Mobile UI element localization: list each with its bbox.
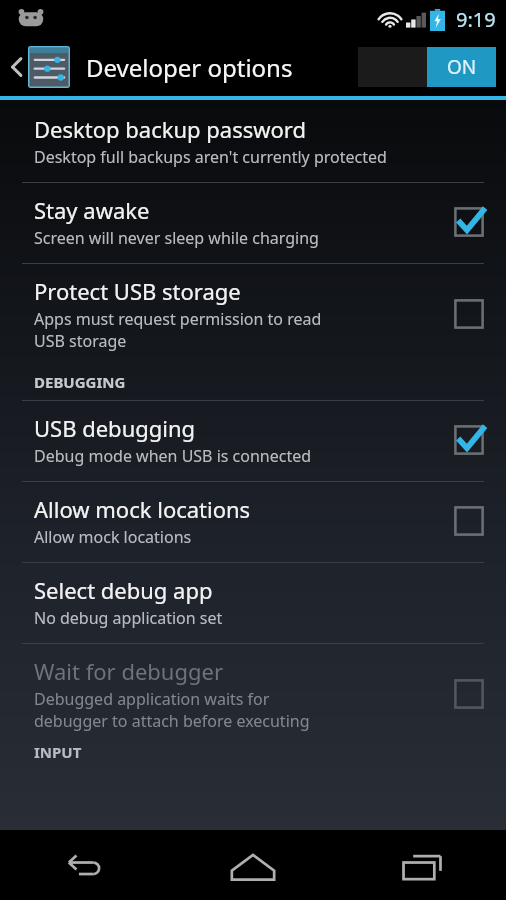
button[interactable]: Select debug app (0, 563, 506, 643)
staticText: No debug application set (34, 607, 223, 629)
staticText: Apps must request permission to read USB… (34, 308, 322, 352)
staticText: Protect USB storage (34, 276, 241, 306)
staticText: DEBUGGING (34, 372, 126, 392)
button[interactable]: Wait for debugger (0, 644, 506, 742)
button[interactable]: Desktop backup password (0, 100, 506, 182)
button[interactable]: Allow mock locations (0, 482, 506, 562)
staticText: Screen will never sleep while charging (34, 227, 319, 249)
staticText: Debug mode when USB is connected (34, 445, 312, 467)
staticText: ON (447, 54, 477, 80)
staticText: Allow mock locations (34, 526, 192, 548)
button[interactable]: Protect USB storage (0, 264, 506, 364)
staticText: Developer options (86, 51, 293, 84)
staticText: Wait for debugger (34, 656, 224, 686)
staticText: Select debug app (34, 575, 213, 605)
staticText: 9:19 (456, 6, 496, 33)
staticText: Allow mock locations (34, 494, 251, 524)
staticText: Desktop backup password (34, 114, 307, 144)
button[interactable]: Unchecked (452, 504, 486, 538)
button[interactable]: Developer options on (358, 47, 496, 87)
button[interactable]: Unchecked (452, 677, 486, 711)
button[interactable]: Checked (452, 423, 486, 457)
button[interactable]: Recent apps (337, 834, 506, 900)
staticText: Desktop full backups aren't currently pr… (34, 146, 387, 168)
button[interactable]: Checked (452, 205, 486, 239)
staticText: Debugged application waits for debugger … (34, 688, 310, 732)
button[interactable]: Navigate up (6, 42, 74, 92)
button[interactable]: USB debugging (0, 401, 506, 481)
button[interactable]: Home (168, 834, 337, 900)
button[interactable]: Stay awake (0, 183, 506, 263)
staticText: Stay awake (34, 195, 150, 225)
staticText: USB debugging (34, 413, 196, 443)
staticText: INPUT (34, 742, 82, 762)
button[interactable]: Unchecked (452, 297, 486, 331)
button[interactable]: Back (0, 834, 168, 900)
